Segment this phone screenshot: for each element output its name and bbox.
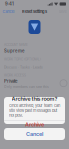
staticText: WORK TOPIC (OPTIONAL) — [4, 57, 41, 61]
staticText: Only members can see this — [4, 85, 49, 89]
staticText: Once archived, your team can still view … — [9, 103, 60, 118]
staticText: Supreme — [4, 48, 25, 53]
staticText: WORK ACCESS — [4, 74, 26, 77]
staticText: Cancel — [26, 131, 43, 137]
staticText: Archive — [25, 121, 44, 128]
staticText: Private — [4, 79, 18, 84]
staticText: Reset settings — [22, 9, 47, 14]
staticText: ACCOUNT NAME — [4, 43, 28, 47]
button[interactable]: Cancel — [2, 9, 14, 14]
button[interactable]: Cancel — [4, 128, 65, 140]
staticText: 9:41 — [5, 1, 14, 7]
staticText: Cancel — [2, 9, 14, 14]
staticText: Discuss · Tasks · Leads — [4, 65, 43, 69]
staticText: Archive this room? — [11, 95, 57, 102]
button[interactable]: Archive — [4, 121, 65, 128]
